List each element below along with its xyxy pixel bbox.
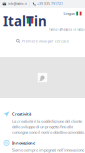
staticText: Partner affidabile in latta integrale [48,28,85,32]
button[interactable]: info@italtin.it [0,0,29,8]
staticText: La creatività è la soddisfazione del cli… [12,118,82,124]
staticText: Creatività [12,111,31,117]
staticText: Siamo sempre impegnati nell'innovazione … [12,147,85,153]
staticText: T [26,12,34,30]
staticText: consegna sono il nostro obiettivo aziend… [12,129,85,135]
staticText: Lingua [63,11,74,16]
button[interactable]: +39 035 791721 [30,0,66,8]
staticText: dallo sviluppo di un progetto fino alla [12,124,73,129]
staticText: info@italtin.it [8,2,27,6]
staticText: in [34,12,47,30]
staticText: +39 035 791721 [37,2,63,6]
button[interactable]: Premere invio per cercare [0,36,85,46]
staticText: Ital [3,12,26,30]
button[interactable]: Lingua [63,10,85,17]
staticText: Premere invio per cercare [22,38,69,44]
staticText: Innovazione [12,140,35,145]
